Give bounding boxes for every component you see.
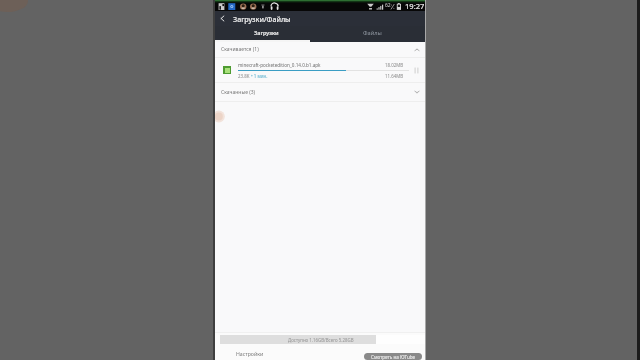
staticText: Загрузки bbox=[254, 29, 279, 37]
staticText: minecraft-pocketedition_0.14.0.b1.apk bbox=[238, 62, 385, 68]
button[interactable]: Загрузки bbox=[214, 26, 319, 42]
button[interactable]: Скачивается (1) bbox=[214, 42, 425, 57]
staticText: Скачанные (3) bbox=[221, 89, 256, 96]
staticText: Скачивается (1) bbox=[221, 46, 259, 53]
staticText: 19:27 bbox=[405, 1, 425, 11]
button[interactable]: Pause bbox=[410, 64, 423, 77]
button[interactable]: Файлы bbox=[319, 26, 425, 42]
staticText: 18.02MB bbox=[385, 62, 404, 68]
staticText: 23.8K bbox=[238, 73, 250, 79]
staticText: Настройки bbox=[236, 350, 264, 357]
button[interactable]: Back bbox=[214, 11, 230, 26]
staticText: • 1 мин. bbox=[251, 73, 268, 79]
staticText: Доступно 1.16GB/Всего 5.28GB bbox=[288, 337, 354, 343]
staticText: Смотреть на ЮTube bbox=[371, 354, 416, 360]
staticText: Файлы bbox=[363, 29, 382, 37]
button[interactable]: Настройки bbox=[214, 345, 425, 360]
button[interactable]: minecraft-pocketedition_0.14.0.b1.apk bbox=[214, 58, 425, 82]
staticText: 62 bbox=[385, 2, 391, 9]
staticText: Загрузки/Файлы bbox=[233, 14, 291, 24]
staticText: 11.64MB bbox=[385, 73, 404, 79]
button[interactable]: Скачанные (3) bbox=[214, 83, 425, 101]
